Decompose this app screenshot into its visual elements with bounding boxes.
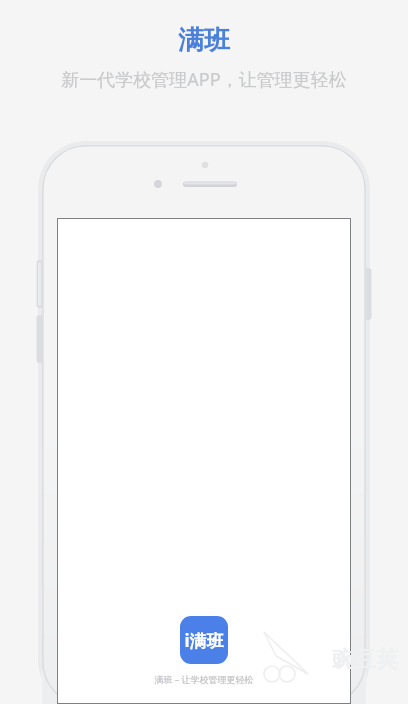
staticText: i满班 xyxy=(184,629,224,652)
staticText: 豌豆荚 xyxy=(332,646,398,674)
button[interactable]: 满班 应用图标 xyxy=(180,616,228,664)
staticText: 新一代学校管理APP，让管理更轻松 xyxy=(61,67,347,92)
staticText: 满班 – 让学校管理更轻松 xyxy=(154,673,254,685)
staticText: 满班 xyxy=(178,24,230,57)
